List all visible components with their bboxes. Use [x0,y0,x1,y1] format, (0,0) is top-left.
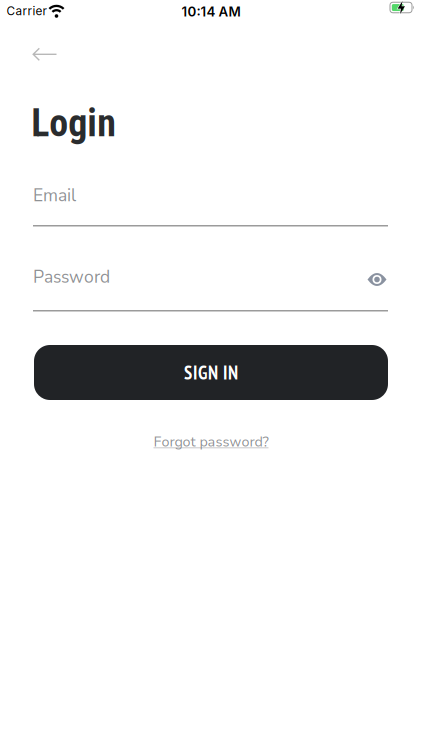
button[interactable]: Back [32,47,57,62]
staticText: 10:14 AM [181,3,240,20]
button[interactable]: Forgot password? [153,432,268,451]
staticText: Email [33,184,76,207]
button[interactable]: Show password [367,273,386,286]
staticText: Carrier [6,4,46,18]
staticText: S I G N I N [184,360,238,385]
staticText: Forgot password? [153,432,268,451]
staticText: Password [33,265,110,289]
staticText: Login [31,101,116,145]
button[interactable]: S I G N I N [34,345,388,400]
